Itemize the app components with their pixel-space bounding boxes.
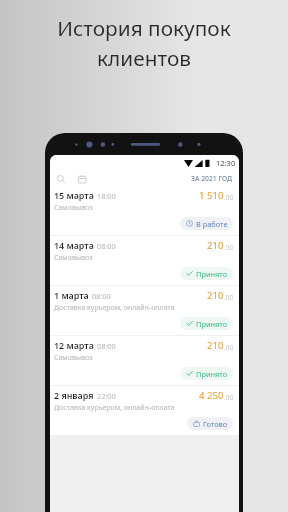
button[interactable]: 12 марта [50, 336, 239, 385]
button[interactable]: 1 марта [50, 286, 239, 335]
staticText: Принято [196, 269, 228, 279]
button[interactable]: ЗА 2021 ГОД [185, 172, 239, 185]
staticText: 15 марта [54, 189, 94, 201]
staticText: 14 марта [54, 239, 94, 251]
staticText: Доставка курьером, онлайн-оплата [54, 303, 175, 313]
button[interactable]: Calendar [75, 172, 88, 185]
button[interactable]: В работе [180, 217, 233, 230]
staticText: Принято [196, 369, 228, 379]
staticText: 210 [207, 339, 224, 352]
button[interactable]: 15 марта [50, 186, 239, 235]
staticText: Доставка курьером, онлайн-оплата [54, 403, 175, 413]
button[interactable]: 2 января [50, 386, 239, 435]
button[interactable]: Принято [180, 367, 233, 380]
staticText: 1 марта [54, 289, 89, 301]
staticText: В работе [196, 219, 228, 229]
staticText: 2 января [54, 389, 94, 401]
staticText: .00 [224, 343, 234, 352]
staticText: .00 [224, 293, 234, 302]
staticText: клиентов [97, 44, 191, 72]
staticText: 210 [207, 289, 224, 302]
button[interactable]: Принято [180, 267, 233, 280]
staticText: 12:30 [216, 158, 236, 168]
staticText: 08:00 [92, 291, 111, 301]
staticText: 4 250 [199, 389, 224, 402]
button[interactable]: Принято [180, 317, 233, 330]
staticText: 1 510 [199, 189, 224, 202]
staticText: 210 [207, 239, 224, 252]
staticText: 12 марта [54, 339, 94, 351]
staticText: .00 [224, 243, 234, 252]
button[interactable]: Готово [187, 417, 233, 430]
staticText: История покупок [57, 14, 231, 42]
staticText: .00 [224, 193, 234, 202]
button[interactable]: 14 марта [50, 236, 239, 285]
staticText: Самовывоз [54, 253, 93, 263]
staticText: Готово [203, 419, 228, 429]
staticText: 08:00 [97, 341, 116, 351]
staticText: Принято [196, 319, 228, 329]
staticText: Самовывоз [54, 353, 93, 363]
staticText: 18:00 [97, 191, 116, 201]
staticText: ЗА 2021 ГОД [191, 174, 233, 183]
staticText: 08:00 [97, 241, 116, 251]
staticText: 22:00 [97, 391, 116, 401]
staticText: Самовывоз [54, 203, 93, 213]
staticText: .00 [224, 393, 234, 402]
button[interactable]: Search [54, 172, 67, 185]
